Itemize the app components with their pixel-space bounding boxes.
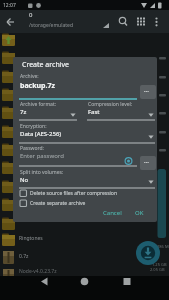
staticText: Create separate archive [30, 200, 86, 207]
staticText: ... [144, 157, 149, 165]
staticText: Archive format: [20, 101, 57, 108]
staticText: Create archive [22, 60, 70, 70]
button[interactable]: 0.7z [0, 0, 10, 7]
staticText: 12:07 [3, 2, 16, 9]
button[interactable] [0, 10, 169, 33]
staticText: 2.05 GB [150, 267, 165, 272]
button[interactable]: ... [140, 156, 156, 170]
staticText: Compression level: [88, 101, 133, 108]
button[interactable]: No [13, 57, 22, 65]
button[interactable] [131, 207, 149, 219]
staticText: 0 [29, 11, 33, 19]
button[interactable] [78, 276, 94, 290]
button[interactable]: Fast [13, 57, 25, 65]
button[interactable]: Ringtones [0, 0, 24, 7]
staticText: Delete source files after compression [30, 190, 117, 197]
staticText: Cancel [103, 209, 122, 217]
staticText: Archive: [20, 73, 39, 80]
button[interactable]: ... [140, 85, 156, 99]
staticText: OK [135, 209, 144, 217]
button[interactable] [136, 241, 160, 265]
staticText: /storage/emulated [29, 22, 73, 29]
staticText: backup.7z [20, 81, 55, 91]
button[interactable]: 7z [13, 57, 20, 65]
staticText: 1.25 GB [152, 262, 167, 267]
button[interactable] [36, 276, 52, 290]
staticText: ... [144, 86, 149, 94]
staticText: 286 MB [157, 244, 169, 249]
button[interactable] [120, 276, 136, 290]
button[interactable] [99, 207, 127, 219]
staticText: Password: [20, 145, 44, 152]
button[interactable]: Data (AES-256) [13, 57, 55, 65]
staticText: Split into volumes: [20, 169, 64, 176]
staticText: Encryption: [20, 123, 47, 130]
staticText: Enter password [20, 152, 64, 160]
button[interactable]: Node-v4.0.23.7z [0, 0, 38, 7]
